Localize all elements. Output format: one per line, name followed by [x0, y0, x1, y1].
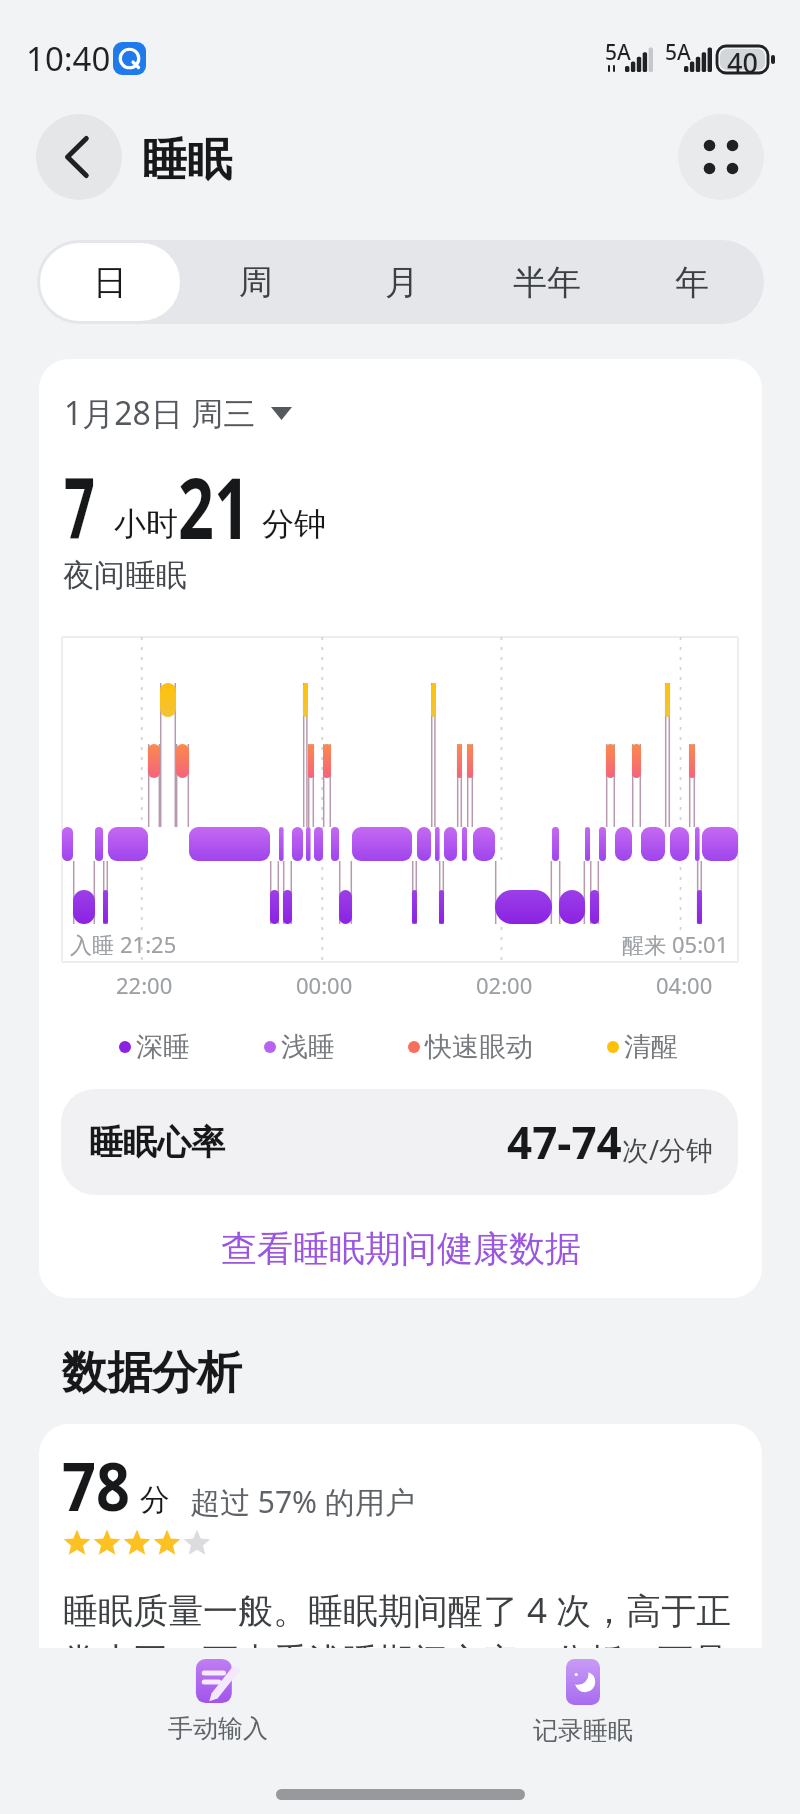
button[interactable]: 半年 — [474, 240, 619, 324]
staticText: 05:01 — [672, 929, 729, 959]
staticText: 查看睡眠期间健康数据 — [221, 1226, 581, 1271]
staticText: 周 — [239, 261, 273, 304]
staticText: 快速眼动 — [425, 1030, 533, 1064]
staticText: 78 — [62, 1440, 130, 1530]
staticText: 手动输入 — [168, 1713, 268, 1744]
staticText: 小时 — [114, 504, 178, 544]
staticText: 浅睡 — [281, 1030, 335, 1064]
staticText: 10:40 — [26, 36, 111, 81]
staticText: 5A — [605, 38, 631, 67]
staticText: 21 — [178, 449, 251, 563]
staticText: 记录睡眠 — [533, 1715, 633, 1746]
staticText: 21:25 — [120, 929, 177, 959]
staticText: 睡眠质量一般。睡眠期间醒了 4 次，高于正常水平，可查看浅睡期间心率，分析一下是… — [63, 1586, 739, 1724]
staticText: 次/分钟 — [622, 1131, 714, 1168]
staticText: 半年 — [513, 261, 581, 304]
staticText: 入睡 — [70, 929, 120, 959]
staticText: 深睡 — [136, 1030, 190, 1064]
staticText: 醒来 — [622, 929, 672, 959]
button[interactable]: 年 — [619, 240, 764, 324]
staticText: 超过 57% 的用户 — [190, 1481, 415, 1522]
staticText: 数据分析 — [62, 1345, 242, 1402]
staticText: 22:00 — [116, 970, 173, 1000]
staticText: 5A — [665, 38, 691, 67]
button[interactable]: 日 — [40, 243, 180, 321]
button[interactable]: More options — [678, 114, 764, 200]
staticText: 睡眠 — [142, 132, 232, 189]
staticText: 日 — [93, 261, 127, 304]
button[interactable]: 记录睡眠 — [503, 1659, 663, 1746]
button[interactable]: 手动输入 — [138, 1659, 298, 1744]
button[interactable]: 查看睡眠期间健康数据 — [39, 1222, 762, 1274]
button[interactable]: 月 — [329, 240, 474, 324]
staticText: 47-74 — [507, 1112, 622, 1172]
staticText: 年 — [675, 261, 709, 304]
staticText: 40 — [727, 44, 758, 81]
staticText: 7 — [64, 449, 95, 563]
staticText: 00:00 — [296, 970, 353, 1000]
staticText: 04:00 — [656, 970, 713, 1000]
staticText: 分 — [140, 1481, 170, 1519]
staticText: 02:00 — [476, 970, 533, 1000]
button[interactable]: 睡眠心率 — [61, 1089, 738, 1195]
staticText: 月 — [385, 261, 419, 304]
staticText: 夜间睡眠 — [63, 556, 187, 595]
staticText: 清醒 — [624, 1030, 678, 1064]
staticText: 1月28日 周三 — [64, 391, 256, 435]
staticText: 睡眠心率 — [89, 1121, 225, 1164]
button[interactable]: 周 — [183, 240, 329, 324]
staticText: 分钟 — [262, 504, 326, 544]
button[interactable]: Back — [36, 114, 122, 200]
